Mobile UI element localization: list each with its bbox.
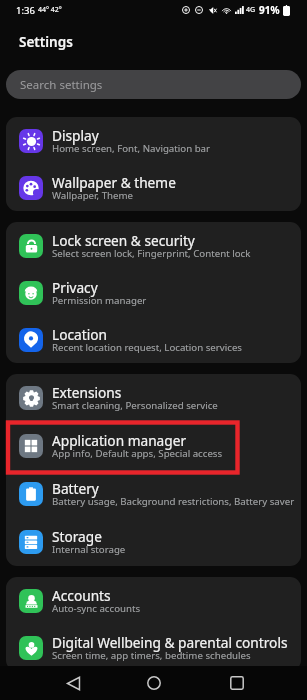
button[interactable]: Accounts xyxy=(6,577,301,624)
staticText: Display xyxy=(52,126,99,145)
button[interactable]: Storage xyxy=(6,518,301,566)
staticText: Recent location request, Location servic… xyxy=(52,341,243,354)
staticText: Location xyxy=(52,325,107,344)
staticText: App info, Default apps, Special access xyxy=(52,447,223,460)
staticText: Storage xyxy=(52,527,102,546)
button[interactable]: Location xyxy=(6,316,301,363)
staticText: Privacy xyxy=(52,278,98,297)
staticText: Battery xyxy=(52,479,99,498)
staticText: 4G xyxy=(246,5,256,15)
staticText: 1:36 xyxy=(16,4,35,17)
staticText: Lock screen & security xyxy=(52,231,195,250)
staticText: Search settings xyxy=(20,77,103,93)
button[interactable]: Search settings xyxy=(6,70,301,99)
staticText: 44° 42° xyxy=(38,5,62,15)
staticText: Battery usage, Background restrictions, … xyxy=(52,495,295,508)
button[interactable]: Battery xyxy=(6,470,301,518)
staticText: Screen time, app timers, bedtime schedul… xyxy=(52,649,251,662)
button[interactable]: Recent apps xyxy=(215,666,259,700)
staticText: Permission manager xyxy=(52,294,147,307)
button[interactable]: Application manager xyxy=(6,422,301,470)
staticText: 91% xyxy=(259,3,280,17)
staticText: Settings xyxy=(19,33,73,51)
staticText: Extensions xyxy=(52,383,122,402)
staticText: Select screen lock, Fingerprint, Content… xyxy=(52,247,251,260)
button[interactable]: Extensions xyxy=(6,374,301,422)
button[interactable]: Display xyxy=(6,117,301,164)
staticText: Auto-sync accounts xyxy=(52,602,141,615)
staticText: Wallpaper, Theme xyxy=(52,189,133,202)
button[interactable]: Digital Wellbeing & parental controls xyxy=(6,624,301,671)
staticText: Application manager xyxy=(52,431,187,450)
button[interactable]: Wallpaper & theme xyxy=(6,164,301,211)
staticText: Accounts xyxy=(52,586,111,605)
button[interactable]: Privacy xyxy=(6,269,301,316)
staticText: Digital Wellbeing & parental controls xyxy=(52,633,288,652)
staticText: Smart cleaning, Personalized service xyxy=(52,399,218,412)
staticText: Internal storage xyxy=(52,543,126,556)
button[interactable]: Lock screen & security xyxy=(6,222,301,269)
button[interactable]: Home xyxy=(132,666,176,700)
staticText: Wallpaper & theme xyxy=(52,173,176,192)
staticText: Home screen, Font, Navigation bar xyxy=(52,142,211,155)
button[interactable]: Back xyxy=(51,666,95,700)
